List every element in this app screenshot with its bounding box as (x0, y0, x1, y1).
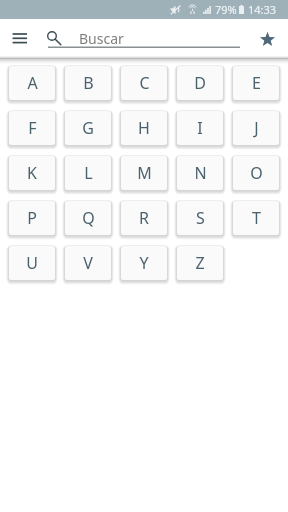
button[interactable]: U (9, 246, 55, 280)
button[interactable]: O (233, 156, 279, 190)
button[interactable]: Menu (2, 21, 38, 57)
button[interactable]: E (233, 66, 279, 100)
staticText: L (84, 162, 93, 184)
button[interactable]: Search (44, 28, 62, 48)
staticText: 14:33 (248, 2, 277, 17)
button[interactable]: L (65, 156, 111, 190)
staticText: R (139, 207, 149, 229)
button[interactable]: V (65, 246, 111, 280)
button[interactable]: D (177, 66, 223, 100)
staticText: Buscar (79, 29, 124, 48)
button[interactable]: G (65, 111, 111, 145)
button[interactable]: M (121, 156, 167, 190)
button[interactable]: C (121, 66, 167, 100)
staticText: J (254, 117, 259, 139)
button[interactable]: Favorites (249, 21, 285, 57)
button[interactable]: K (9, 156, 55, 190)
staticText: E (252, 72, 261, 94)
staticText: I (197, 117, 203, 139)
staticText: Z (195, 252, 205, 274)
staticText: U (26, 252, 38, 274)
staticText: V (83, 252, 93, 274)
button[interactable]: T (233, 201, 279, 235)
staticText: M (137, 162, 152, 184)
button[interactable]: J (233, 111, 279, 145)
staticText: P (27, 207, 37, 229)
button[interactable]: F (9, 111, 55, 145)
button[interactable]: S (177, 201, 223, 235)
staticText: C (139, 72, 150, 94)
staticText: B (83, 72, 94, 94)
button[interactable]: N (177, 156, 223, 190)
staticText: N (194, 162, 207, 184)
button[interactable]: Q (65, 201, 111, 235)
button[interactable]: H (121, 111, 167, 145)
button[interactable]: R (121, 201, 167, 235)
button[interactable]: P (9, 201, 55, 235)
button[interactable]: Z (177, 246, 223, 280)
staticText: O (250, 162, 263, 184)
staticText: G (82, 117, 94, 139)
button[interactable]: A (9, 66, 55, 100)
staticText: D (194, 72, 206, 94)
button[interactable]: Buscar (48, 25, 240, 52)
staticText: 79% (215, 2, 237, 17)
button[interactable]: B (65, 66, 111, 100)
staticText: Y (139, 252, 149, 274)
staticText: A (27, 72, 38, 94)
staticText: T (252, 207, 261, 229)
staticText: S (196, 207, 205, 229)
button[interactable]: Y (121, 246, 167, 280)
staticText: H (138, 117, 150, 139)
staticText: K (27, 162, 37, 184)
staticText: F (28, 117, 37, 139)
staticText: Q (82, 207, 95, 229)
button[interactable]: I (177, 111, 223, 145)
